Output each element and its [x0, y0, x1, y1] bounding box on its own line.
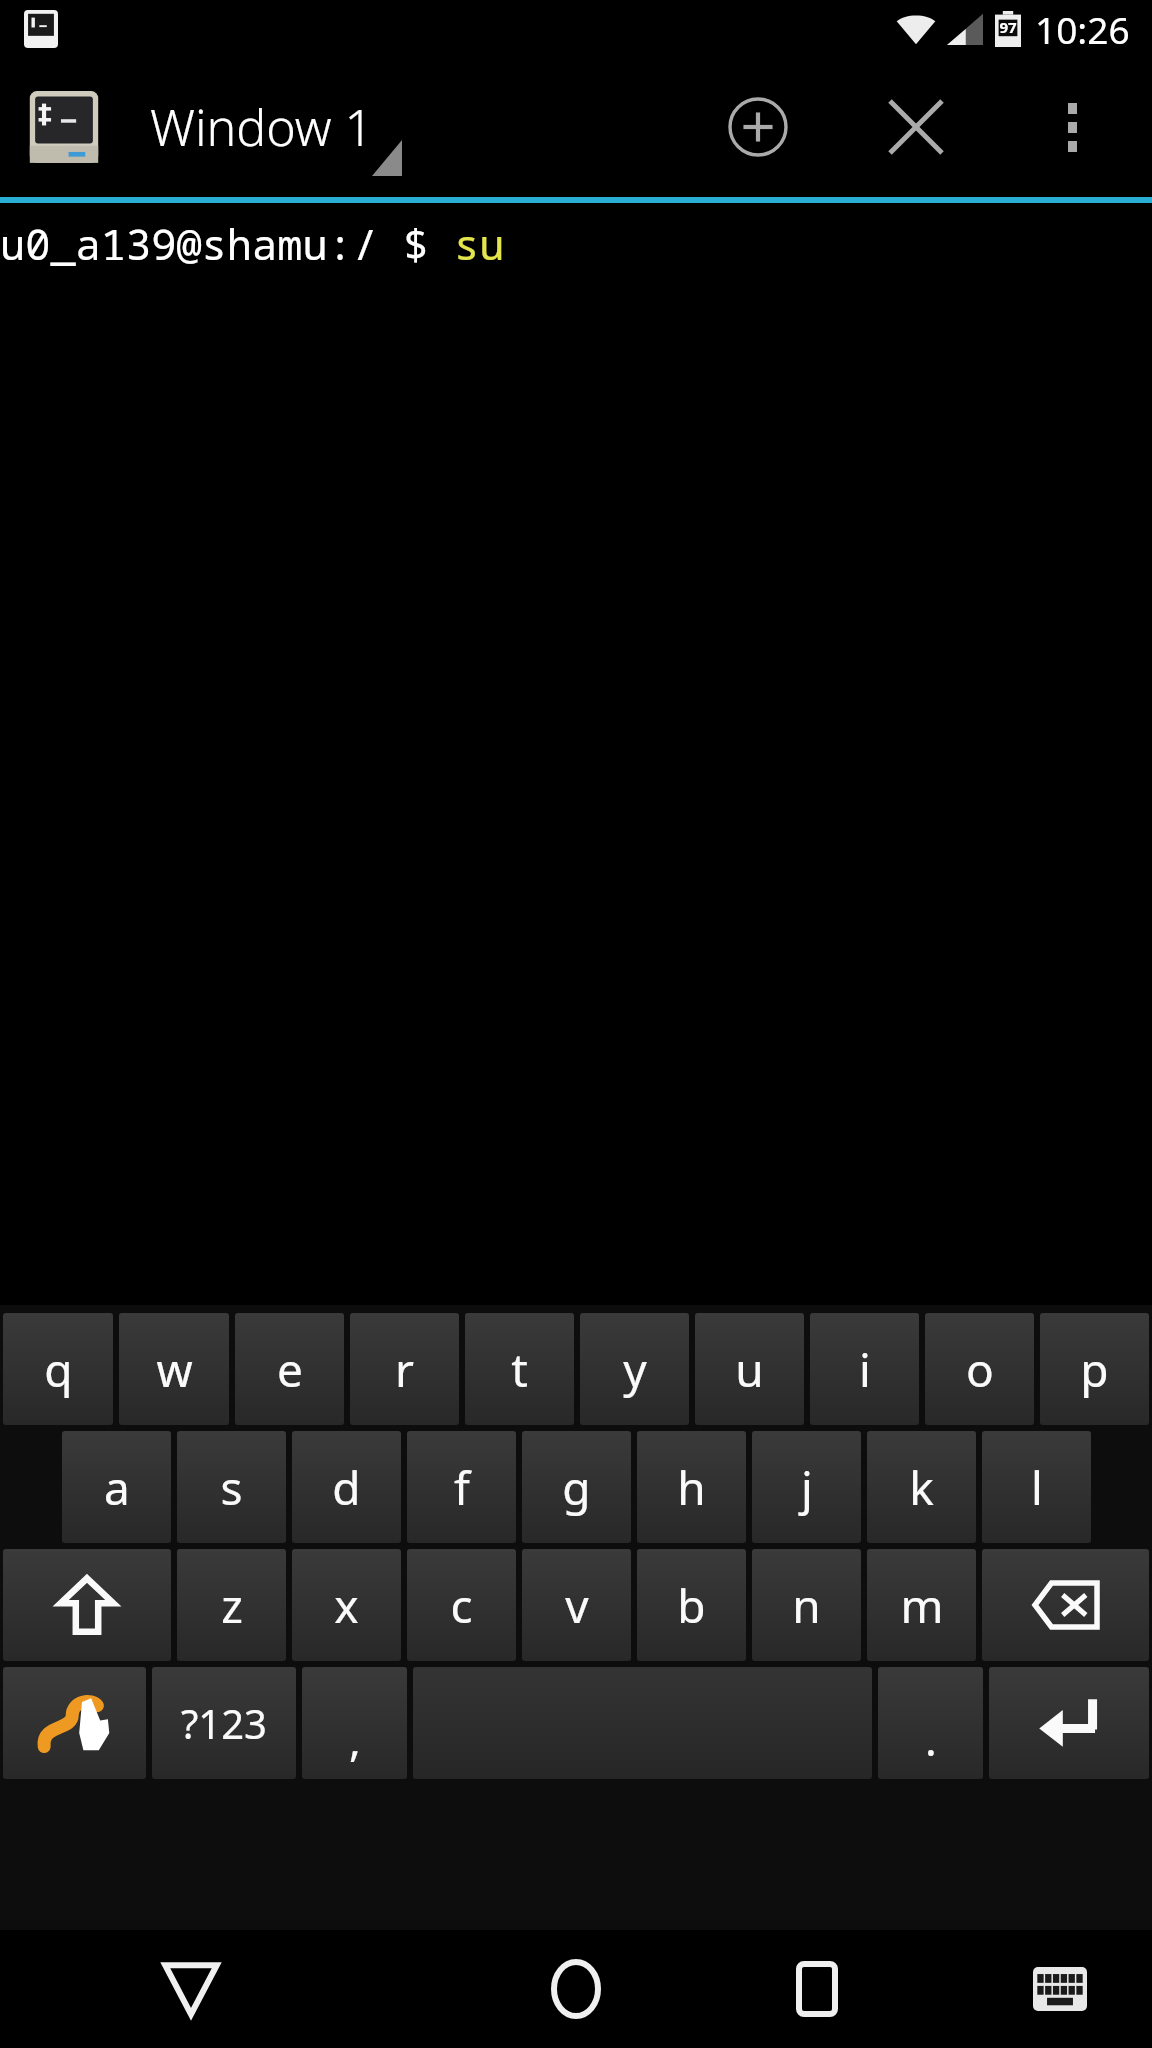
button[interactable]: ,: [302, 1667, 407, 1779]
button[interactable]: c: [407, 1549, 516, 1661]
staticText: w: [156, 1338, 193, 1401]
button[interactable]: b: [637, 1549, 746, 1661]
button[interactable]: m: [867, 1549, 976, 1661]
button[interactable]: x: [292, 1549, 401, 1661]
staticText: g: [562, 1456, 591, 1519]
button[interactable]: Window 1: [150, 93, 374, 161]
staticText: u: [735, 1338, 764, 1401]
staticText: a: [104, 1456, 130, 1519]
staticText: 97: [999, 17, 1017, 37]
button[interactable]: a: [62, 1431, 171, 1543]
staticText: y: [623, 1338, 647, 1401]
staticText: d: [332, 1456, 361, 1519]
button[interactable]: l: [982, 1431, 1091, 1543]
button[interactable]: w: [119, 1313, 229, 1425]
button[interactable]: Terminal window icon: [26, 88, 102, 166]
staticText: t: [511, 1338, 528, 1401]
button[interactable]: q: [3, 1313, 113, 1425]
staticText: r: [395, 1338, 414, 1401]
staticText: j: [801, 1456, 813, 1519]
button[interactable]: Shift: [3, 1549, 171, 1661]
staticText: su: [454, 215, 505, 272]
button[interactable]: Enter: [989, 1667, 1149, 1779]
staticText: k: [909, 1456, 934, 1519]
staticText: Window 1: [150, 93, 374, 161]
button[interactable]: Switch keyboard: [1012, 1941, 1108, 2037]
staticText: e: [277, 1338, 303, 1401]
button[interactable]: Home: [521, 1934, 631, 2044]
button[interactable]: v: [522, 1549, 631, 1661]
staticText: c: [450, 1574, 473, 1637]
button[interactable]: Recent apps: [762, 1934, 872, 2044]
button[interactable]: .: [878, 1667, 983, 1779]
button[interactable]: Backspace: [982, 1549, 1149, 1661]
button[interactable]: d: [292, 1431, 401, 1543]
button[interactable]: g: [522, 1431, 631, 1543]
staticText: h: [677, 1456, 706, 1519]
button[interactable]: e: [235, 1313, 344, 1425]
button[interactable]: t: [465, 1313, 574, 1425]
button[interactable]: Close window: [870, 81, 962, 173]
staticText: q: [44, 1338, 73, 1401]
button[interactable]: u: [695, 1313, 804, 1425]
button[interactable]: p: [1040, 1313, 1149, 1425]
button[interactable]: Space: [413, 1667, 872, 1779]
staticText: v: [565, 1574, 589, 1637]
button[interactable]: More options: [1026, 81, 1118, 173]
button[interactable]: k: [867, 1431, 976, 1543]
button[interactable]: ?123: [152, 1667, 296, 1779]
button[interactable]: z: [177, 1549, 286, 1661]
button[interactable]: j: [752, 1431, 861, 1543]
button[interactable]: r: [350, 1313, 459, 1425]
button[interactable]: n: [752, 1549, 861, 1661]
staticText: ?123: [181, 1696, 267, 1750]
staticText: x: [334, 1574, 359, 1637]
staticText: u0_a139@shamu:/ $: [0, 215, 454, 272]
staticText: n: [792, 1574, 821, 1637]
button[interactable]: f: [407, 1431, 516, 1543]
button[interactable]: Gesture typing: [3, 1667, 146, 1779]
staticText: m: [900, 1574, 944, 1637]
button[interactable]: h: [637, 1431, 746, 1543]
staticText: b: [677, 1574, 706, 1637]
button[interactable]: Back: [136, 1934, 246, 2044]
button[interactable]: i: [810, 1313, 919, 1425]
staticText: o: [966, 1338, 994, 1401]
staticText: l: [1031, 1456, 1043, 1519]
button[interactable]: y: [580, 1313, 689, 1425]
staticText: f: [454, 1456, 470, 1519]
staticText: .: [925, 1709, 937, 1769]
staticText: z: [221, 1574, 243, 1637]
staticText: ,: [349, 1709, 361, 1769]
staticText: s: [220, 1456, 243, 1519]
staticText: p: [1080, 1338, 1109, 1401]
staticText: i: [859, 1338, 871, 1401]
button[interactable]: o: [925, 1313, 1034, 1425]
button[interactable]: New window: [712, 81, 804, 173]
button[interactable]: s: [177, 1431, 286, 1543]
staticText: 10:26: [1035, 4, 1130, 54]
